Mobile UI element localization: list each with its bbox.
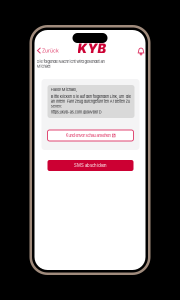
staticText: https://kyb-as.com/p/9Wb6rD: [51, 110, 102, 114]
button[interactable]: Benachrichtigungen: [135, 45, 146, 57]
button[interactable]: Zurück: [35, 45, 61, 56]
staticText: KYB: [77, 41, 106, 56]
staticText: Zurück: [42, 47, 59, 54]
button[interactable]: SMS abschicken: [47, 160, 133, 171]
staticText: Bitte klicken Sie auf den folgenden Link…: [51, 94, 131, 108]
staticText: Kundenvorschau ansehen: [66, 133, 111, 138]
button[interactable]: Kundenvorschau ansehen: [47, 130, 133, 141]
staticText: Hallo! Michael,: [51, 87, 77, 92]
staticText: SMS abschicken: [74, 163, 107, 168]
staticText: Die folgende Nachricht wird gesendet an …: [36, 59, 104, 69]
